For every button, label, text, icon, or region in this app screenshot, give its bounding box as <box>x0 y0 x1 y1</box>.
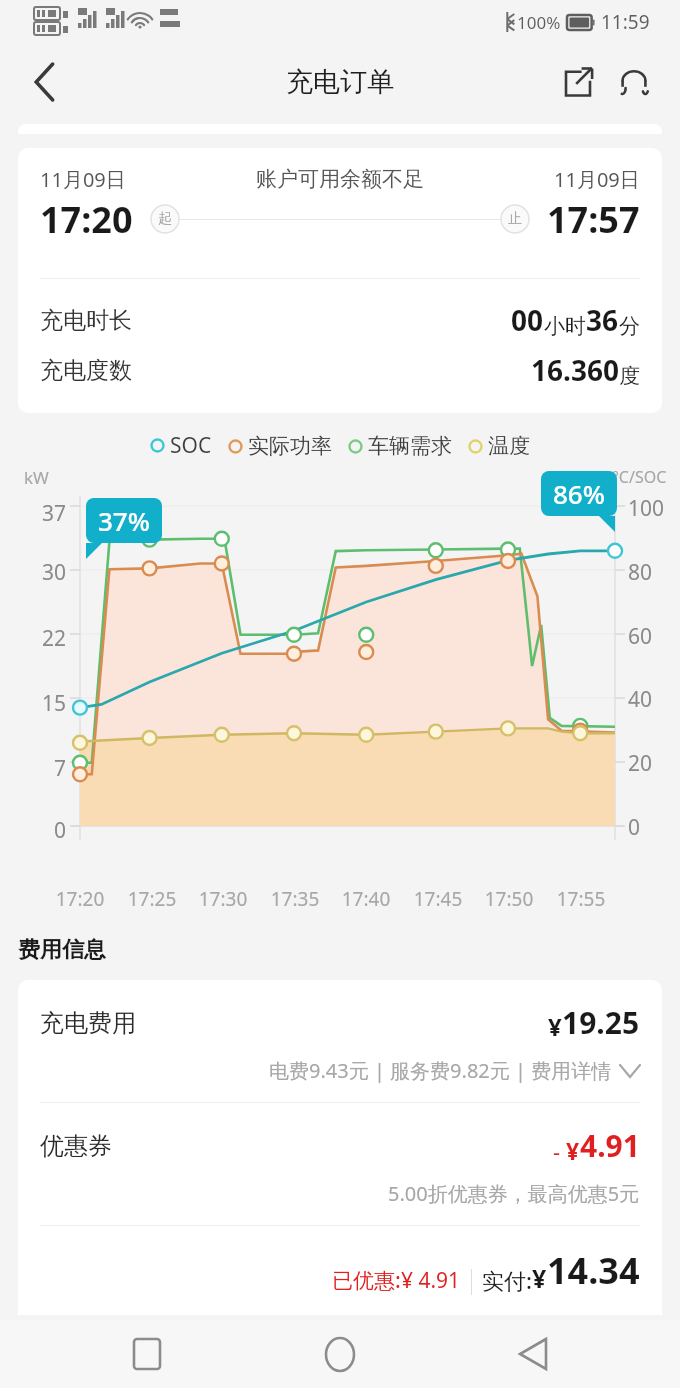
staticText: 100 <box>628 494 665 523</box>
staticText: 5.00折优惠券，最高优惠5元 <box>388 1180 640 1207</box>
staticText: 100% <box>517 11 561 34</box>
staticText: 0 <box>22 816 66 845</box>
staticText: 22 <box>22 624 66 653</box>
staticText: 充电时长 <box>40 306 132 335</box>
staticText: 30 <box>22 558 66 587</box>
staticText: 20 <box>628 749 653 778</box>
staticText: 17:20 <box>40 195 133 244</box>
staticText: 16.360 <box>531 351 619 389</box>
staticText: ¥ <box>548 1010 562 1043</box>
staticText: 账户可用余额不足 <box>256 166 424 192</box>
staticText: 17:40 <box>338 886 394 912</box>
staticText: 36 <box>586 301 619 339</box>
staticText: 17:50 <box>481 886 537 912</box>
staticText: 止 <box>508 210 522 228</box>
staticText: 40 <box>628 685 653 714</box>
staticText: 4.91 <box>580 1125 640 1166</box>
button[interactable]: 电费9.43元 | 服务费9.82元 | 费用详情 <box>40 1057 640 1084</box>
staticText: SOC <box>170 431 212 460</box>
staticText: 优惠券 <box>40 1131 112 1161</box>
staticText: 充电订单 <box>286 65 394 99</box>
staticText: 温度 <box>488 433 530 459</box>
staticText: 86% <box>553 476 605 511</box>
staticText: 15 <box>22 689 66 718</box>
staticText: 实际功率 <box>248 433 332 459</box>
staticText: 80 <box>628 558 653 587</box>
staticText: 实付: <box>482 1265 532 1295</box>
staticText: 0 <box>628 813 641 842</box>
staticText: 17:25 <box>124 886 180 912</box>
staticText: 11月09日 <box>554 166 640 193</box>
staticText: 费用信息 <box>18 936 106 964</box>
staticText: 17:20 <box>52 886 108 912</box>
staticText: ¥ 4.91 <box>401 1266 461 1295</box>
staticText: 起 <box>158 210 172 228</box>
staticText: 60 <box>628 622 653 651</box>
staticText: 小时 <box>544 313 586 339</box>
button[interactable]: Share <box>552 56 604 108</box>
staticText: 车辆需求 <box>368 433 452 459</box>
staticText: 17:35 <box>267 886 323 912</box>
staticText: 11:59 <box>601 9 650 35</box>
staticText: 分 <box>619 313 640 339</box>
button[interactable]: Support <box>608 56 660 108</box>
staticText: 电费9.43元 | 服务费9.82元 | 费用详情 <box>269 1057 612 1084</box>
staticText: 19.25 <box>562 1002 640 1043</box>
staticText: 已优惠: <box>332 1266 401 1295</box>
staticText: 充电度数 <box>40 356 132 385</box>
button[interactable]: Back <box>499 1320 567 1388</box>
staticText: kW <box>24 466 49 489</box>
staticText: °C/SOC <box>612 466 667 488</box>
staticText: ¥ <box>532 1261 547 1295</box>
staticText: 17:57 <box>547 195 640 244</box>
staticText: ¥ <box>566 1135 580 1166</box>
staticText: 11月09日 <box>40 166 126 193</box>
staticText: 17:45 <box>410 886 466 912</box>
staticText: 充电费用 <box>40 1008 136 1038</box>
staticText: - <box>553 1136 566 1166</box>
button[interactable]: Recents <box>113 1320 181 1388</box>
staticText: 度 <box>619 363 640 389</box>
staticText: 14.34 <box>547 1246 640 1295</box>
staticText: 37 <box>22 499 66 528</box>
button[interactable]: Home <box>306 1320 374 1388</box>
staticText: 7 <box>22 754 66 783</box>
staticText: 17:55 <box>553 886 609 912</box>
button[interactable]: Back <box>18 55 72 109</box>
staticText: 37% <box>98 503 150 538</box>
staticText: 00 <box>511 301 544 339</box>
staticText: 17:30 <box>195 886 251 912</box>
